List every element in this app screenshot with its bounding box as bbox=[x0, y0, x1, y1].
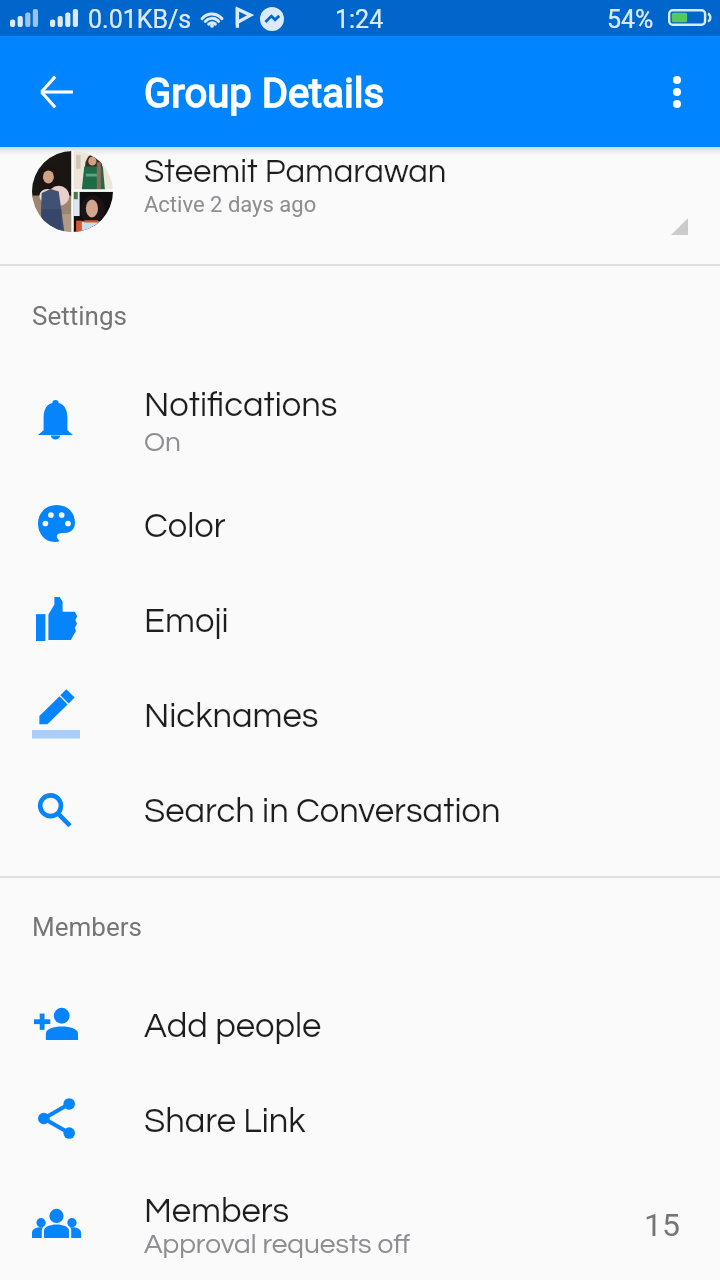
staticText: Active 2 days ago bbox=[144, 192, 317, 218]
staticText: Add people bbox=[144, 1009, 322, 1045]
button[interactable]: Color bbox=[0, 476, 720, 571]
staticText: Color bbox=[144, 509, 226, 545]
staticText: Settings bbox=[32, 301, 127, 331]
staticText: 0.01KB/s bbox=[88, 5, 192, 34]
staticText: 15 bbox=[644, 1206, 680, 1244]
staticText: Notifications bbox=[144, 388, 338, 424]
button[interactable]: Emoji bbox=[0, 571, 720, 666]
staticText: Members bbox=[144, 1194, 290, 1230]
button[interactable]: Share Link bbox=[0, 1071, 720, 1166]
staticText: Approval requests off bbox=[144, 1230, 411, 1259]
button[interactable]: More options bbox=[644, 59, 710, 125]
button[interactable]: Members bbox=[0, 1166, 720, 1280]
button[interactable]: Steemit Pamarawan bbox=[0, 147, 720, 263]
button[interactable]: Notifications bbox=[0, 364, 720, 476]
staticText: Search in Conversation bbox=[144, 794, 501, 830]
staticText: Share Link bbox=[144, 1104, 306, 1140]
staticText: On bbox=[144, 428, 181, 457]
button[interactable]: Nicknames bbox=[0, 666, 720, 761]
button[interactable]: Add people bbox=[0, 976, 720, 1071]
staticText: Steemit Pamarawan bbox=[144, 155, 447, 189]
staticText: Emoji bbox=[144, 604, 229, 640]
staticText: Group Details bbox=[144, 70, 385, 117]
staticText: 54% bbox=[607, 5, 654, 34]
button[interactable]: Search in Conversation bbox=[0, 761, 720, 856]
staticText: Nicknames bbox=[144, 699, 319, 735]
button[interactable]: Back bbox=[23, 59, 89, 125]
staticText: Members bbox=[32, 912, 142, 942]
staticText: 1:24 bbox=[335, 5, 384, 34]
